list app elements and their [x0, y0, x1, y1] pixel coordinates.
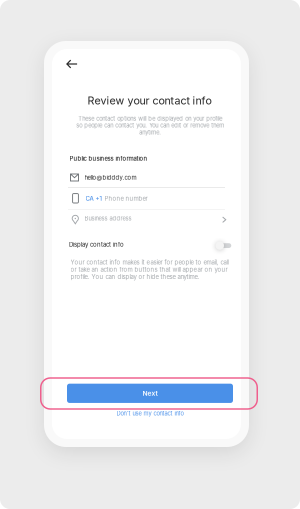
- staticText: CA +1: [85, 195, 101, 202]
- staticText: Display contact info: [69, 241, 124, 248]
- button[interactable]: [68, 188, 225, 208]
- button[interactable]: [68, 209, 225, 229]
- button[interactable]: [63, 235, 230, 253]
- staticText: hello@bidddy.com: [84, 174, 136, 181]
- staticText: Review your contact info: [87, 94, 211, 107]
- staticText: Your contact info makes it easier for pe…: [70, 259, 228, 280]
- staticText: Don't use my contact info: [116, 410, 183, 417]
- button[interactable]: Next: [67, 384, 233, 403]
- staticText: These contact options will be displayed …: [76, 115, 224, 136]
- button[interactable]: Back: [57, 51, 87, 77]
- staticText: Public business information: [69, 155, 147, 162]
- staticText: Next: [142, 389, 157, 397]
- staticText: Phone number: [104, 195, 147, 202]
- staticText: Business address: [84, 215, 131, 222]
- button[interactable]: Don't use my contact info: [100, 407, 200, 419]
